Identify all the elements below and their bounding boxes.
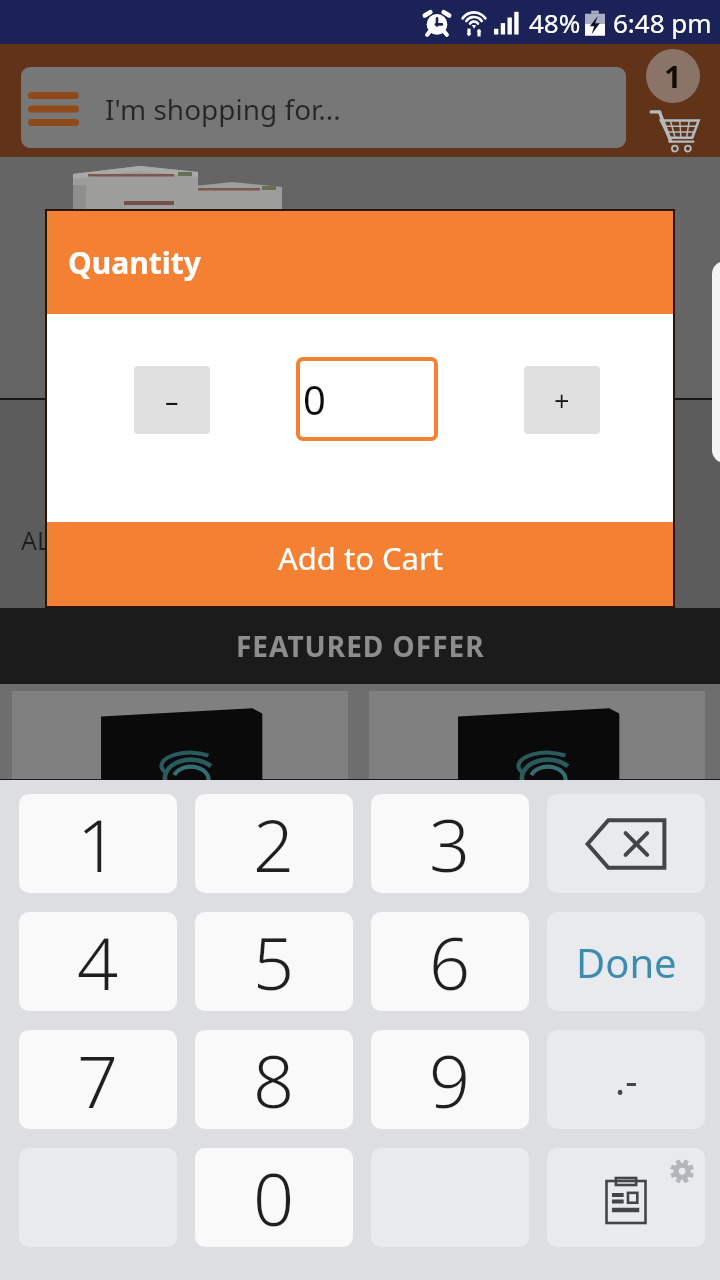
staticText: I'm shopping for... [105,90,341,128]
staticText: 0 [253,1149,295,1247]
staticText: 1 [77,795,119,893]
button[interactable]: Backspace [547,794,705,893]
staticText: 6 [429,913,471,1011]
button[interactable]: Decrease [134,366,210,434]
staticText: 7 [77,1031,119,1129]
staticText: .- [615,1054,638,1106]
button[interactable]: 3 [371,794,529,893]
button[interactable]: Menu [21,67,626,148]
button[interactable]: 7 [19,1030,177,1129]
button[interactable]: 9 [371,1030,529,1129]
button[interactable]: 2 [195,794,353,893]
staticText: 0 [303,372,326,426]
button[interactable]: 1 [19,794,177,893]
button[interactable]: Done [547,912,705,1011]
button[interactable]: 0 [296,357,438,441]
staticText: 6:48 pm [613,5,712,40]
button[interactable]: Increase [524,366,600,434]
staticText: 3 [429,795,471,893]
staticText: 4 [77,913,119,1011]
button[interactable]: Menu [21,67,85,148]
staticText: FEATURED OFFER [236,627,485,665]
button[interactable]: Clipboard [547,1148,705,1247]
staticText: Done [576,935,677,989]
button[interactable]: 8 [195,1030,353,1129]
staticText: AL [21,523,51,557]
staticText: 5 [253,913,295,1011]
staticText: – [165,382,179,419]
button[interactable]: 1 [646,49,700,103]
button[interactable]: 5 [195,912,353,1011]
button[interactable]: Decimal point [547,1030,705,1129]
button[interactable]: 6 [371,912,529,1011]
button[interactable]: 0 [195,1148,353,1247]
staticText: 2 [253,795,295,893]
staticText: + [554,382,570,419]
staticText: Quantity [68,242,201,283]
staticText: 1 [664,55,682,97]
button[interactable]: Add to Cart [47,522,673,606]
button[interactable]: 4 [19,912,177,1011]
button[interactable]: Shopping cart [646,46,706,154]
staticText: 9 [429,1031,471,1129]
staticText: 8 [253,1031,295,1129]
staticText: 48% [529,5,581,40]
staticText: Add to Cart [278,537,443,579]
